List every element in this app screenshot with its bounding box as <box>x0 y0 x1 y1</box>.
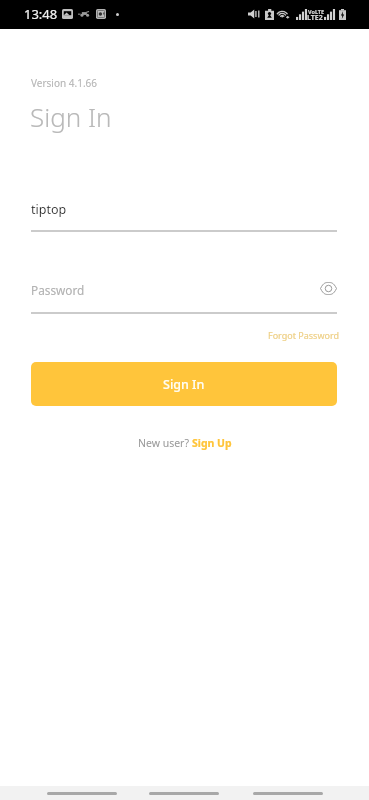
staticText: VoLTE <box>308 8 325 15</box>
button[interactable]: Forgot Password <box>266 327 342 343</box>
button[interactable]: Sign In <box>31 362 337 406</box>
staticText: LTE2 <box>307 13 323 23</box>
staticText: Sign In <box>30 99 112 134</box>
staticText: Password <box>31 282 85 298</box>
button[interactable]: Recents <box>239 786 337 800</box>
button[interactable]: Back <box>33 786 131 800</box>
staticText: 13:48 <box>24 5 58 23</box>
staticText: Forgot Password <box>268 329 340 341</box>
staticText: Sign In <box>163 376 205 393</box>
button[interactable]: Home <box>135 786 233 800</box>
staticText: tiptop <box>31 201 67 218</box>
staticText: Sign Up <box>192 436 232 450</box>
button[interactable]: Sign Up <box>192 436 232 450</box>
staticText: New user? <box>138 436 192 450</box>
button[interactable]: Show password <box>316 276 340 300</box>
staticText: Version 4.1.66 <box>31 76 98 90</box>
